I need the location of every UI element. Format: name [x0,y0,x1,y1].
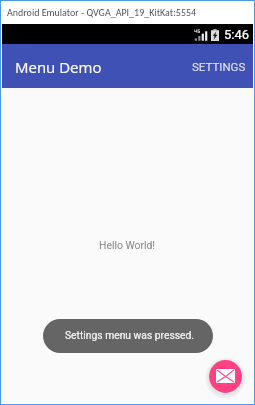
staticText: Menu Demo [15,57,102,77]
button[interactable]: Compose email [205,356,246,397]
staticText: SETTINGS [192,60,246,73]
staticText: Android Emulator - QVGA_API_19_KitKat:55… [7,6,197,18]
staticText: Settings menu was pressed. [65,329,195,341]
staticText: Hello World! [99,239,156,251]
staticText: 5:46 [224,27,250,42]
button[interactable]: SETTINGS [183,49,253,84]
